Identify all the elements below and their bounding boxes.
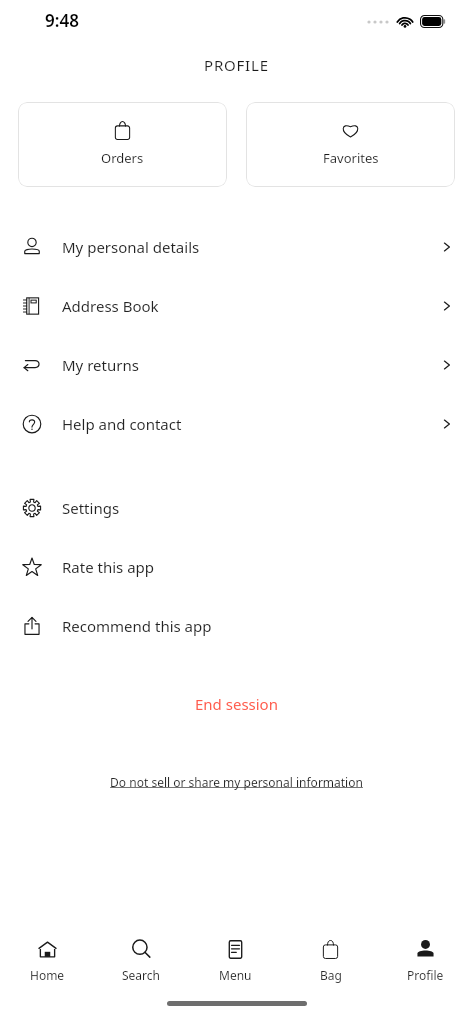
button[interactable]: Search: [94, 924, 188, 996]
button[interactable]: Help and contact: [0, 394, 473, 453]
staticText: Recommend this app: [62, 616, 451, 636]
button[interactable]: Menu: [188, 924, 283, 996]
staticText: Help and contact: [62, 414, 443, 434]
button[interactable]: Address Book: [0, 276, 473, 335]
staticText: My personal details: [62, 237, 443, 257]
staticText: PROFILE: [204, 55, 269, 75]
staticText: End session: [195, 694, 278, 714]
button[interactable]: Rate this app: [0, 537, 473, 596]
staticText: Home: [30, 967, 65, 983]
button[interactable]: My personal details: [0, 217, 473, 276]
staticText: Search: [122, 967, 160, 983]
button[interactable]: End session: [175, 688, 298, 720]
button[interactable]: Recommend this app: [0, 596, 473, 655]
button[interactable]: Bag: [283, 924, 378, 996]
staticText: Bag: [320, 967, 342, 983]
staticText: Settings: [62, 498, 451, 518]
button[interactable]: Home: [0, 924, 94, 996]
button[interactable]: Favorites: [246, 102, 455, 187]
button[interactable]: Settings: [0, 478, 473, 537]
button[interactable]: My returns: [0, 335, 473, 394]
staticText: Address Book: [62, 296, 443, 316]
staticText: Favorites: [323, 149, 379, 167]
staticText: 9:48: [45, 9, 79, 32]
staticText: Do not sell or share my personal informa…: [110, 774, 363, 790]
button[interactable]: Orders: [18, 102, 227, 187]
staticText: My returns: [62, 355, 443, 375]
button[interactable]: Profile: [378, 924, 473, 996]
staticText: Menu: [219, 967, 252, 983]
button[interactable]: Do not sell or share my personal informa…: [96, 768, 377, 796]
staticText: Rate this app: [62, 557, 451, 577]
staticText: Orders: [101, 149, 144, 167]
staticText: Profile: [407, 967, 444, 983]
